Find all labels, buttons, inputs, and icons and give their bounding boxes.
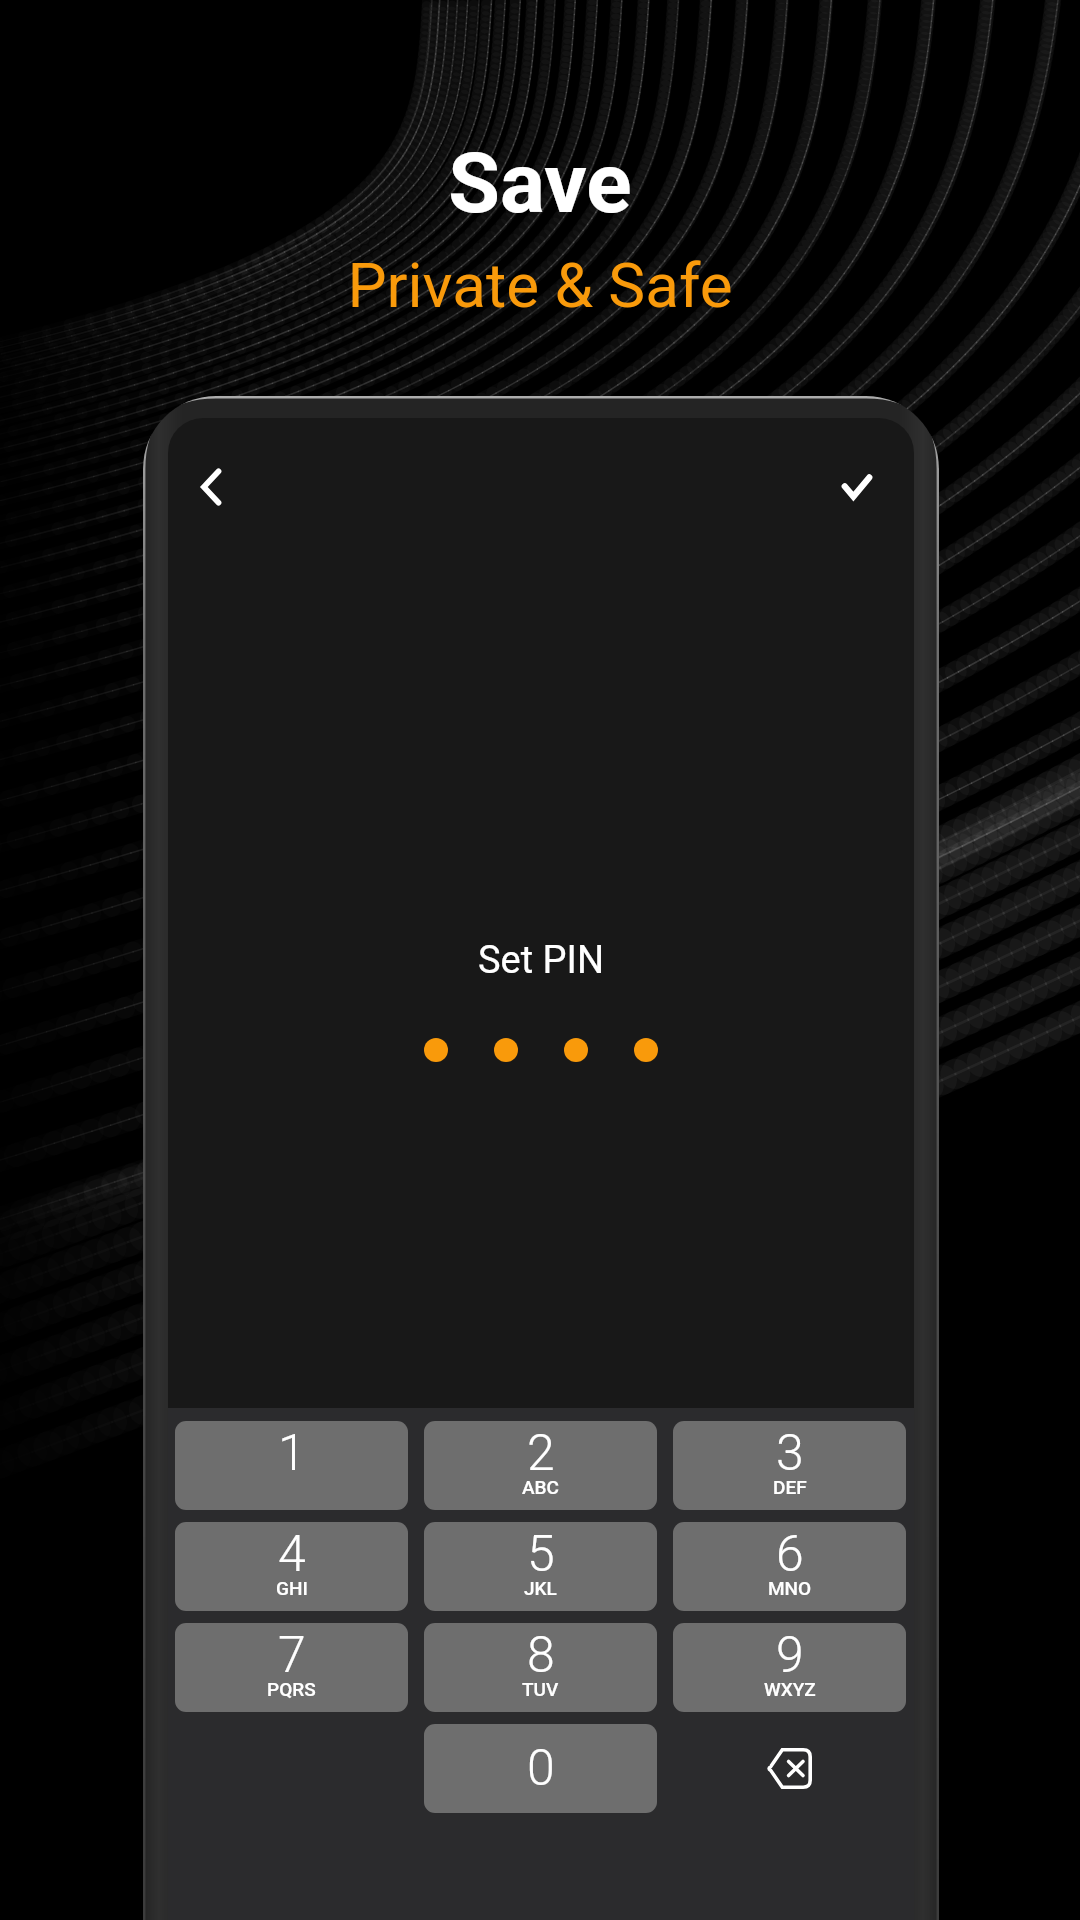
staticText: 6 xyxy=(776,1525,804,1584)
button[interactable]: 4 xyxy=(175,1522,408,1611)
staticText: 4 xyxy=(278,1525,306,1584)
staticText: Private & Safe xyxy=(347,249,733,322)
staticText: ABC xyxy=(522,1476,559,1498)
button[interactable]: 1 xyxy=(175,1421,408,1510)
staticText: 8 xyxy=(527,1626,555,1685)
button[interactable]: 0 xyxy=(424,1724,657,1813)
staticText: 9 xyxy=(776,1626,804,1685)
button[interactable]: 5 xyxy=(424,1522,657,1611)
button[interactable]: Backspace xyxy=(673,1724,906,1813)
button[interactable]: 8 xyxy=(424,1623,657,1712)
staticText: 1 xyxy=(278,1424,306,1483)
staticText: 0 xyxy=(527,1739,555,1798)
button[interactable]: Confirm PIN xyxy=(815,445,899,529)
staticText: Set PIN xyxy=(478,938,604,983)
staticText: GHI xyxy=(276,1577,308,1599)
button[interactable]: 3 xyxy=(673,1421,906,1510)
staticText: 5 xyxy=(527,1525,555,1584)
staticText: DEF xyxy=(773,1476,807,1498)
staticText: 2 xyxy=(527,1424,555,1483)
staticText: 7 xyxy=(278,1626,306,1685)
button[interactable]: Back xyxy=(169,445,253,529)
staticText: MNO xyxy=(768,1577,812,1599)
staticText: TUV xyxy=(522,1678,559,1700)
staticText: JKL xyxy=(524,1577,557,1599)
staticText: WXYZ xyxy=(764,1678,816,1700)
staticText: 3 xyxy=(776,1424,804,1483)
button[interactable]: 6 xyxy=(673,1522,906,1611)
button[interactable]: 7 xyxy=(175,1623,408,1712)
button[interactable]: 2 xyxy=(424,1421,657,1510)
staticText: Save xyxy=(448,134,632,232)
staticText: PQRS xyxy=(267,1678,316,1700)
button[interactable]: 9 xyxy=(673,1623,906,1712)
